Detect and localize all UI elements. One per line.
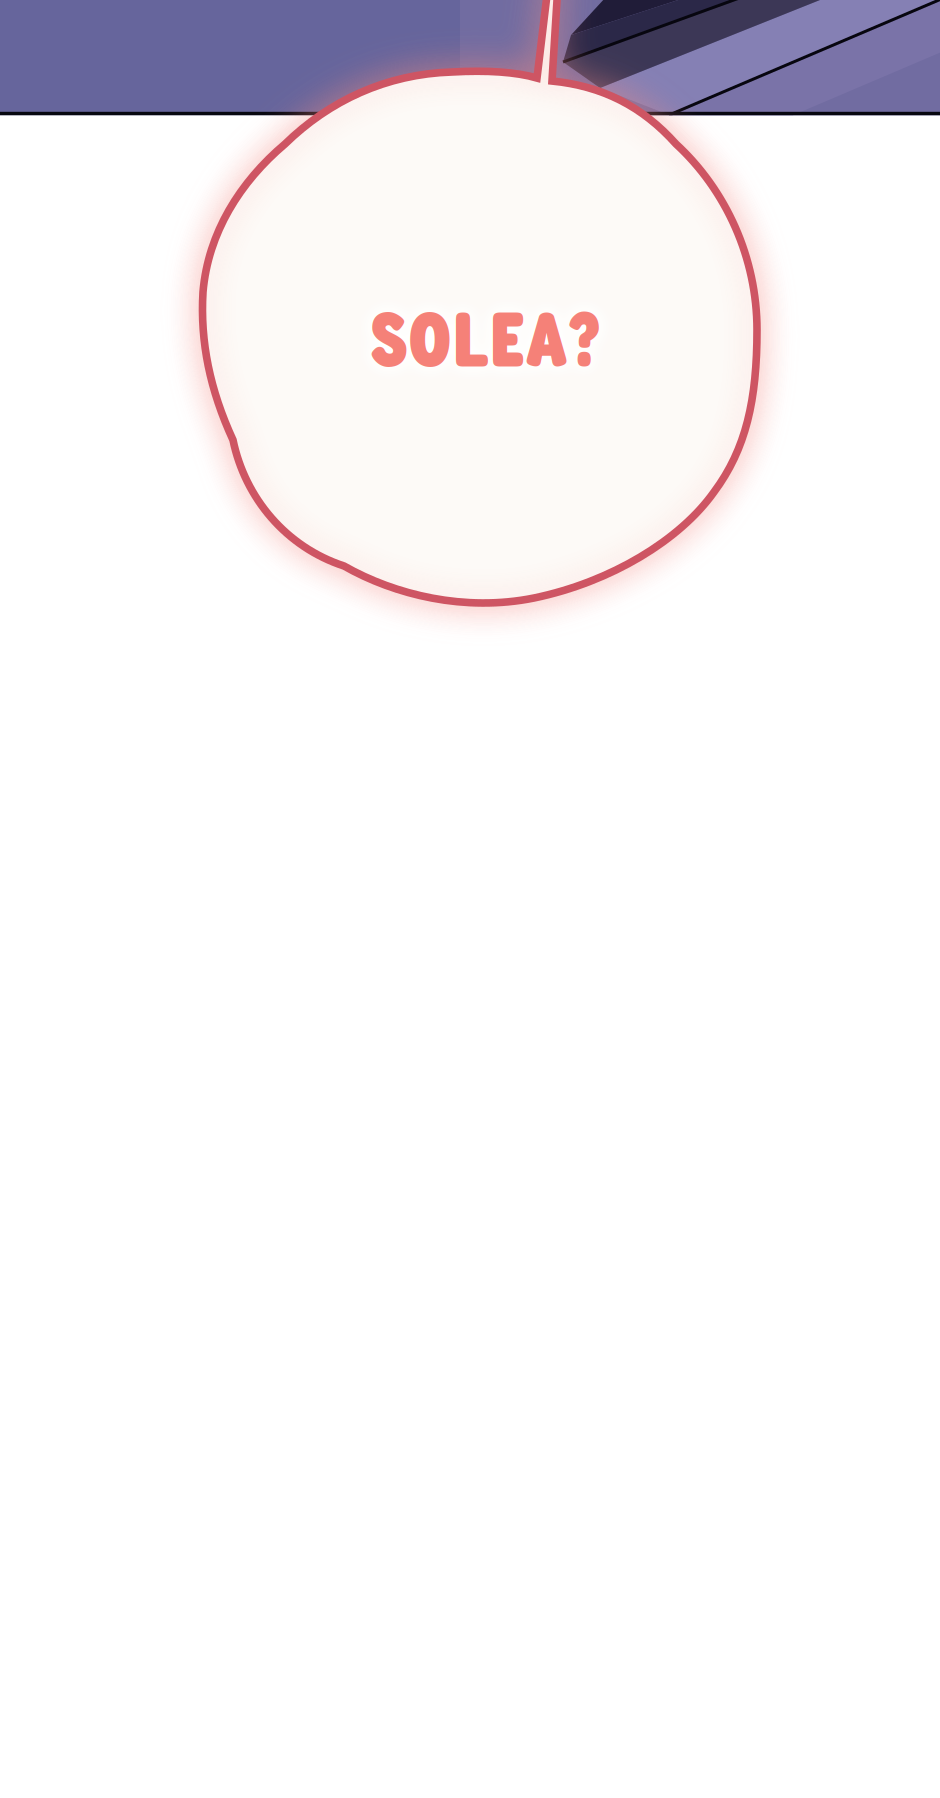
staticText: SOLEA?: [370, 290, 601, 384]
staticText: SOLEA?: [370, 290, 601, 384]
